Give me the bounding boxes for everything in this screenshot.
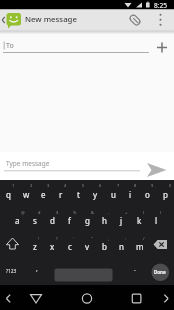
button[interactable] [0, 287, 20, 310]
staticText: New message [25, 14, 77, 25]
staticText: $ [56, 210, 59, 215]
button[interactable]: w [19, 182, 34, 206]
staticText: ) [160, 210, 162, 215]
staticText: 8 [134, 183, 137, 188]
staticText: i [129, 189, 132, 200]
staticText: g [85, 215, 90, 226]
staticText: . [134, 264, 136, 274]
button[interactable] [144, 152, 174, 180]
staticText: " [91, 236, 93, 241]
button[interactable] [0, 32, 150, 54]
staticText: m [136, 241, 144, 252]
button[interactable] [156, 287, 174, 310]
staticText: + [125, 210, 128, 215]
staticText: b [102, 241, 107, 252]
staticText: x [50, 241, 55, 252]
button[interactable] [0, 9, 24, 30]
button[interactable]: l [149, 208, 164, 232]
staticText: u [111, 189, 116, 200]
button[interactable]: , [30, 258, 44, 280]
button[interactable]: d [45, 208, 60, 232]
button[interactable]: h [97, 208, 112, 232]
button[interactable] [148, 233, 174, 259]
staticText: c [68, 241, 72, 252]
staticText: d [50, 215, 55, 226]
button[interactable]: b [97, 234, 112, 258]
staticText: o [145, 189, 150, 200]
staticText: Done [154, 269, 166, 275]
staticText: 4 [64, 183, 67, 188]
staticText: 1 [12, 183, 15, 188]
staticText: ! [38, 236, 40, 241]
button[interactable] [77, 287, 97, 310]
button[interactable]: p [158, 182, 173, 206]
button[interactable]: Done [151, 263, 169, 281]
staticText: l [155, 215, 158, 226]
button[interactable]: t [71, 182, 86, 206]
staticText: f [68, 215, 71, 226]
button[interactable]: u [106, 182, 121, 206]
button[interactable]: ?123 [0, 260, 22, 282]
staticText: e [41, 189, 46, 200]
staticText: 6 [99, 183, 102, 188]
staticText: r [59, 189, 63, 200]
button[interactable]: s [27, 208, 42, 232]
button[interactable]: o [140, 182, 155, 206]
staticText: ? [56, 236, 58, 241]
staticText: y [93, 189, 98, 200]
button[interactable] [55, 269, 113, 282]
staticText: 2 [30, 183, 33, 188]
button[interactable]: . [128, 258, 142, 280]
button[interactable]: n [114, 234, 129, 258]
staticText: 3 [47, 183, 50, 188]
staticText: z [33, 241, 37, 252]
button[interactable] [127, 287, 147, 310]
button[interactable]: v [80, 234, 95, 258]
button[interactable]: y [88, 182, 103, 206]
button[interactable] [150, 32, 174, 54]
button[interactable] [150, 9, 174, 30]
button[interactable] [0, 152, 144, 180]
staticText: 9 [151, 183, 154, 188]
staticText: @ [21, 210, 25, 215]
staticText: ?123 [6, 268, 17, 275]
staticText: a [15, 215, 20, 226]
button[interactable]: i [123, 182, 138, 206]
staticText: w [23, 189, 30, 200]
staticText: 7 [117, 183, 120, 188]
staticText: 8:25 [154, 1, 167, 10]
staticText: ' [73, 236, 74, 241]
button[interactable]: z [27, 234, 42, 258]
staticText: , [36, 264, 38, 274]
button[interactable]: j [114, 208, 129, 232]
button[interactable] [0, 233, 26, 259]
staticText: / [143, 236, 145, 241]
button[interactable]: g [80, 208, 95, 232]
staticText: p [163, 189, 168, 200]
staticText: ; [108, 236, 110, 241]
staticText: v [85, 241, 90, 252]
button[interactable]: f [62, 208, 77, 232]
staticText: j [120, 215, 123, 226]
button[interactable]: m [132, 234, 147, 258]
button[interactable] [26, 287, 46, 310]
button[interactable]: q [1, 182, 16, 206]
button[interactable]: k [132, 208, 147, 232]
staticText: % [73, 210, 77, 215]
staticText: n [119, 241, 124, 252]
button[interactable]: a [10, 208, 25, 232]
staticText: & [91, 210, 94, 215]
staticText: # [38, 210, 41, 215]
staticText: k [137, 215, 142, 226]
button[interactable]: e [36, 182, 51, 206]
staticText: 0 [169, 183, 172, 188]
button[interactable] [124, 9, 146, 30]
button[interactable]: c [62, 234, 77, 258]
button[interactable]: x [45, 234, 60, 258]
staticText: To [6, 41, 14, 51]
staticText: ( [143, 210, 145, 215]
staticText: : [125, 236, 127, 241]
staticText: 5 [82, 183, 85, 188]
button[interactable]: r [53, 182, 68, 206]
